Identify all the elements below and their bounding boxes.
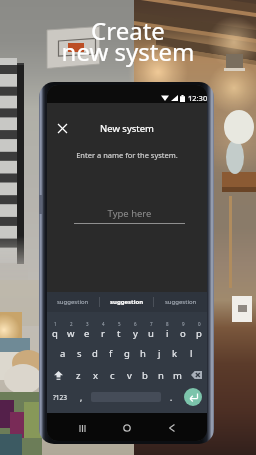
staticText: 1 <box>54 321 57 327</box>
staticText: b <box>142 369 148 382</box>
button[interactable]: l <box>183 342 199 364</box>
staticText: suggestion <box>165 298 197 306</box>
button[interactable]: 3 <box>79 320 95 342</box>
staticText: p <box>196 327 202 340</box>
staticText: 0 <box>198 321 201 327</box>
button[interactable]: suggestion <box>100 292 153 312</box>
button[interactable]: z <box>70 364 87 386</box>
staticText: k <box>172 347 178 360</box>
staticText: suggestion <box>57 298 89 306</box>
button[interactable]: j <box>151 342 167 364</box>
staticText: f <box>109 347 113 360</box>
button[interactable]: , <box>73 386 89 408</box>
button[interactable]: suggestion <box>47 292 99 312</box>
staticText: u <box>148 327 154 340</box>
staticText: z <box>76 369 81 382</box>
button[interactable]: ?123 <box>47 386 73 408</box>
staticText: 9 <box>182 321 185 327</box>
staticText: c <box>110 369 115 382</box>
staticText: r <box>101 327 105 340</box>
staticText: y <box>133 327 138 340</box>
button[interactable]: 5 <box>111 320 127 342</box>
staticText: q <box>52 327 58 340</box>
staticText: Type here <box>74 207 185 220</box>
button[interactable]: m <box>169 364 185 386</box>
staticText: h <box>140 347 146 360</box>
staticText: New system <box>100 122 154 135</box>
button[interactable]: x <box>87 364 104 386</box>
button[interactable]: a <box>55 342 71 364</box>
staticText: t <box>117 327 121 340</box>
button[interactable]: . <box>163 386 179 408</box>
staticText: e <box>84 327 90 340</box>
staticText: i <box>166 327 169 340</box>
staticText: , <box>80 392 83 403</box>
button[interactable]: Recents <box>72 418 92 438</box>
staticText: 5 <box>118 321 121 327</box>
staticText: Create new system <box>0 14 256 68</box>
button[interactable]: 8 <box>159 320 175 342</box>
staticText: 12:30 <box>188 93 207 103</box>
staticText: 2 <box>70 321 73 327</box>
button[interactable]: f <box>103 342 119 364</box>
staticText: 6 <box>134 321 137 327</box>
staticText: 3 <box>86 321 89 327</box>
button[interactable]: Enter <box>179 386 207 408</box>
button[interactable]: Back <box>162 418 182 438</box>
staticText: Enter a name for the system. <box>47 150 207 160</box>
button[interactable]: s <box>71 342 87 364</box>
staticText: j <box>158 347 161 360</box>
staticText: o <box>180 327 186 340</box>
button[interactable]: 4 <box>95 320 111 342</box>
button[interactable]: v <box>121 364 137 386</box>
staticText: 7 <box>150 321 153 327</box>
button[interactable]: g <box>119 342 135 364</box>
button[interactable]: Home <box>117 418 137 438</box>
staticText: x <box>93 369 99 382</box>
button[interactable]: 9 <box>175 320 191 342</box>
button[interactable]: k <box>167 342 183 364</box>
button[interactable]: 6 <box>127 320 143 342</box>
staticText: 8 <box>166 321 169 327</box>
staticText: a <box>60 347 66 360</box>
staticText: w <box>67 327 75 340</box>
staticText: m <box>173 369 182 382</box>
staticText: 4 <box>102 321 105 327</box>
button[interactable]: c <box>104 364 121 386</box>
button[interactable]: h <box>135 342 151 364</box>
staticText: v <box>127 369 132 382</box>
staticText: s <box>77 347 82 360</box>
button[interactable]: 0 <box>191 320 207 342</box>
staticText: n <box>158 369 164 382</box>
staticText: d <box>92 347 98 360</box>
button[interactable]: suggestion <box>154 292 207 312</box>
staticText: . <box>170 392 173 403</box>
button[interactable]: Shift <box>47 364 70 386</box>
button[interactable]: 1 <box>47 320 63 342</box>
staticText: l <box>190 347 193 360</box>
staticText: suggestion <box>110 298 144 306</box>
button[interactable]: n <box>153 364 169 386</box>
button[interactable]: 7 <box>143 320 159 342</box>
staticText: g <box>124 347 130 360</box>
staticText: ?123 <box>53 393 67 402</box>
button[interactable]: 2 <box>63 320 79 342</box>
button[interactable]: d <box>87 342 103 364</box>
button[interactable]: b <box>137 364 153 386</box>
button[interactable]: Backspace <box>185 364 207 386</box>
button[interactable]: Close <box>54 120 70 136</box>
